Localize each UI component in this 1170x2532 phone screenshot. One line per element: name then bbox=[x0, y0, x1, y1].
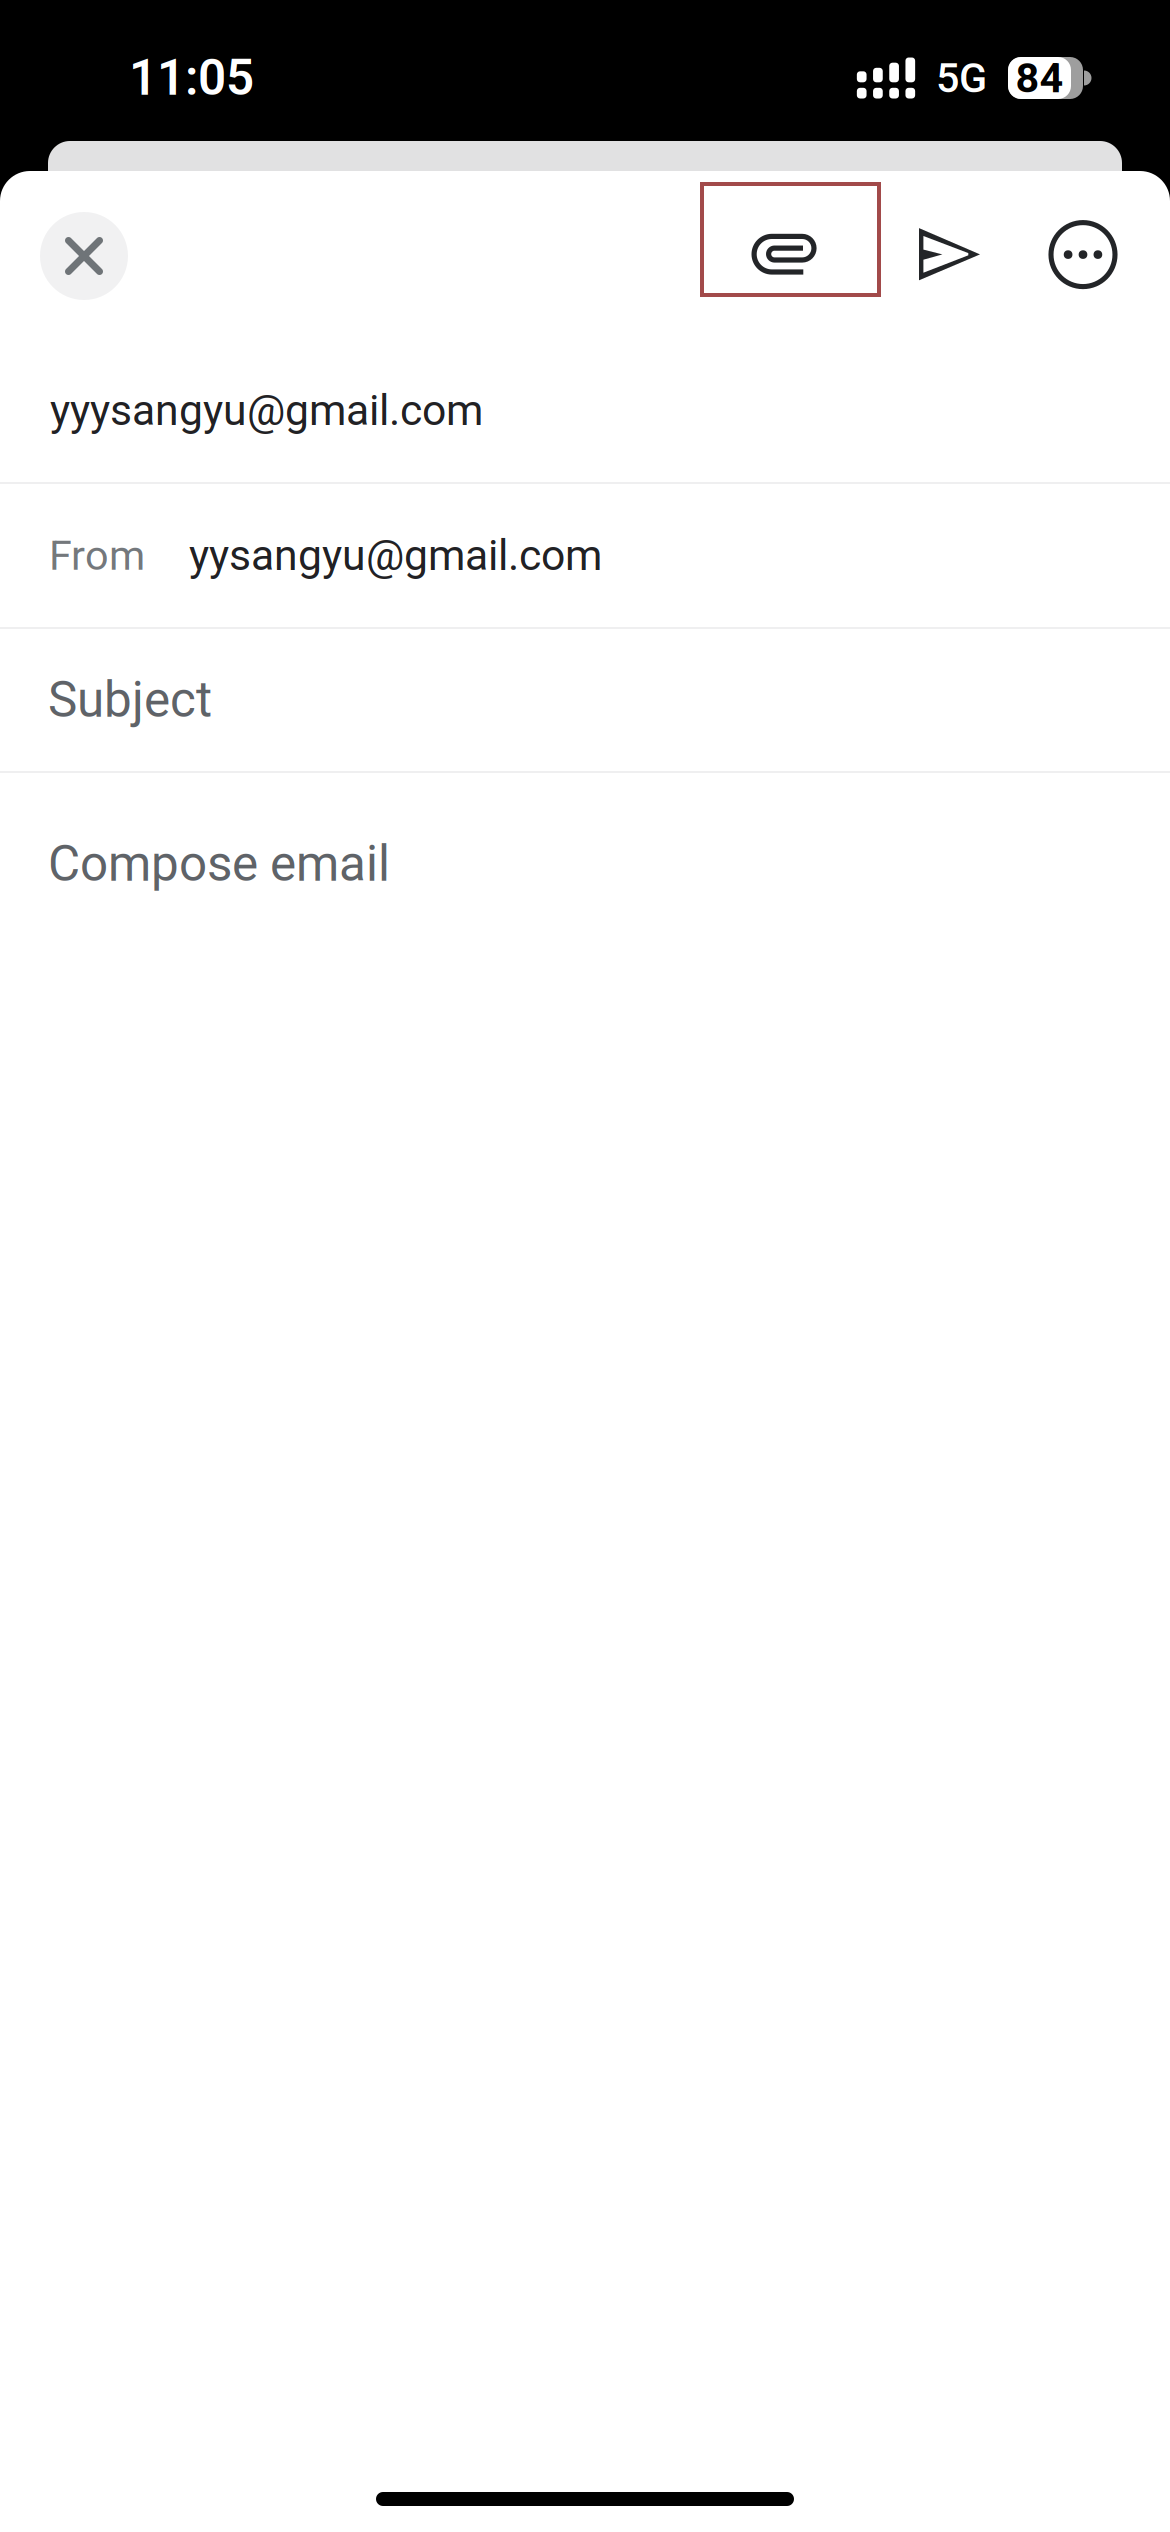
staticText: yyysangyu@gmail.com bbox=[50, 385, 483, 435]
button[interactable]: Compose email bbox=[0, 773, 1170, 2466]
staticText: From bbox=[49, 531, 145, 580]
staticText: 84 bbox=[1015, 54, 1063, 102]
button[interactable]: Close bbox=[40, 171, 128, 300]
staticText: Subject bbox=[48, 671, 212, 729]
staticText: yysangyu@gmail.com bbox=[189, 530, 602, 580]
button[interactable]: yyysangyu@gmail.com bbox=[0, 339, 1170, 482]
button[interactable]: Attach file bbox=[702, 171, 879, 295]
staticText: 5G bbox=[936, 54, 987, 102]
staticText: Compose email bbox=[48, 835, 390, 893]
button[interactable]: From bbox=[0, 484, 1170, 627]
button[interactable]: Send bbox=[899, 171, 1000, 280]
button[interactable]: Subject bbox=[0, 629, 1170, 771]
staticText: 11:05 bbox=[129, 49, 254, 107]
button[interactable]: More options bbox=[1033, 171, 1133, 287]
